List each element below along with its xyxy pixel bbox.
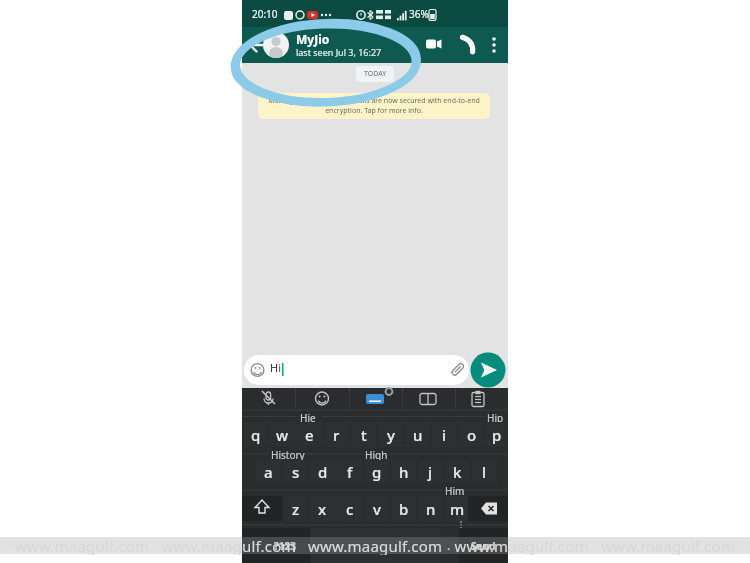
button[interactable]: q	[243, 422, 268, 447]
button[interactable]	[350, 388, 402, 410]
staticText: t	[361, 425, 367, 445]
button[interactable]	[296, 388, 349, 410]
staticText: www.maagulf.com www.maagulf.com www.maag…	[15, 536, 736, 555]
staticText: g	[372, 462, 382, 482]
staticText: 20:10	[252, 7, 278, 21]
staticText: h	[399, 462, 409, 482]
staticText: k	[453, 462, 462, 482]
staticText: y	[387, 425, 395, 445]
staticText: History	[271, 448, 305, 462]
button[interactable]: p	[486, 422, 507, 447]
staticText: p	[492, 425, 502, 445]
button[interactable]	[420, 30, 448, 60]
button[interactable]: l	[472, 460, 497, 483]
button[interactable]: n	[418, 496, 443, 521]
staticText: r	[333, 425, 340, 445]
button[interactable]	[242, 496, 282, 521]
button[interactable]: c	[337, 496, 362, 521]
staticText: a	[264, 462, 273, 482]
staticText: x	[318, 499, 327, 519]
staticText: Hi	[270, 360, 281, 375]
button[interactable]	[468, 496, 508, 521]
button[interactable]: .	[442, 536, 456, 554]
staticText: m	[450, 499, 465, 519]
staticText: u	[413, 425, 423, 445]
button[interactable]	[403, 388, 455, 410]
staticText: ,	[293, 537, 297, 553]
button[interactable]: i	[432, 422, 457, 447]
staticText: TODAY	[364, 69, 387, 79]
button[interactable]: o	[459, 422, 484, 447]
button[interactable]: v	[364, 496, 389, 521]
staticText: d	[318, 462, 328, 482]
button[interactable]	[470, 352, 506, 388]
staticText: Him	[445, 484, 465, 498]
button[interactable]	[242, 528, 310, 563]
button[interactable]: w	[270, 422, 295, 447]
button[interactable]: u	[405, 422, 430, 447]
staticText: MyJio	[296, 31, 330, 47]
button[interactable]: h	[391, 460, 416, 483]
staticText: c	[346, 499, 354, 519]
button[interactable]	[242, 388, 295, 410]
button[interactable]	[242, 27, 402, 63]
staticText: ?123	[274, 539, 296, 553]
staticText: v	[373, 499, 381, 519]
staticText: .	[447, 537, 451, 553]
button[interactable]	[454, 30, 480, 60]
button[interactable]: y	[378, 422, 403, 447]
staticText: Hie	[300, 411, 316, 425]
button[interactable]: g	[364, 460, 389, 483]
staticText: q	[251, 425, 261, 445]
button[interactable]: m	[445, 496, 470, 521]
button[interactable]: s	[283, 460, 308, 483]
staticText: High	[365, 448, 388, 462]
staticText: n	[426, 499, 436, 519]
button[interactable]: r	[324, 422, 349, 447]
staticText: s	[292, 462, 300, 482]
staticText: z	[292, 499, 300, 519]
staticText: Send	[471, 539, 496, 553]
button[interactable]: e	[297, 422, 322, 447]
button[interactable]	[456, 388, 508, 410]
button[interactable]: a	[256, 460, 281, 483]
button[interactable]	[486, 30, 504, 60]
button[interactable]: b	[391, 496, 416, 521]
button[interactable]: j	[418, 460, 443, 483]
staticText: last seen Jul 3, 16:27	[296, 46, 382, 58]
staticText: j	[428, 462, 433, 482]
staticText: l	[482, 462, 487, 482]
button[interactable]: ,	[288, 536, 302, 554]
button[interactable]: t	[351, 422, 376, 447]
button[interactable]: z	[283, 496, 308, 521]
staticText: b	[399, 499, 409, 519]
button[interactable]	[311, 528, 441, 563]
button[interactable]: k	[445, 460, 470, 483]
staticText: Hip	[487, 411, 504, 425]
button[interactable]: Send	[459, 528, 508, 563]
staticText: w	[276, 425, 289, 445]
button[interactable]: Messages to this chat and calls are now …	[258, 93, 490, 119]
staticText: Messages to this chat and calls are now …	[268, 96, 480, 116]
button[interactable]: d	[310, 460, 335, 483]
staticText: 36%	[409, 7, 429, 21]
button[interactable]: x	[310, 496, 335, 521]
staticText: i	[442, 425, 447, 445]
button[interactable]: f	[337, 460, 362, 483]
staticText: e	[305, 425, 314, 445]
staticText: o	[467, 425, 477, 445]
button[interactable]	[244, 355, 469, 385]
staticText: f	[347, 462, 353, 482]
